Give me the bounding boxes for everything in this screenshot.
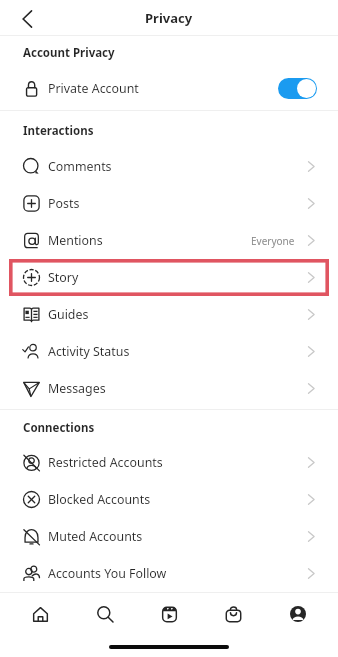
staticText: Story: [48, 269, 79, 286]
button[interactable]: Guides: [0, 296, 338, 333]
staticText: Privacy: [145, 9, 193, 27]
staticText: Posts: [48, 195, 80, 212]
staticText: Guides: [48, 306, 89, 323]
button[interactable]: Private Account: [0, 70, 338, 107]
button[interactable]: Shop: [209, 593, 257, 635]
staticText: Private Account: [48, 80, 139, 97]
button[interactable]: Search: [81, 593, 129, 635]
button[interactable]: Accounts You Follow: [0, 555, 338, 592]
button[interactable]: Comments: [0, 148, 338, 185]
staticText: Comments: [48, 158, 112, 175]
staticText: Messages: [48, 380, 106, 397]
staticText: Restricted Accounts: [48, 454, 163, 471]
staticText: Activity Status: [48, 343, 130, 360]
button[interactable]: Restricted Accounts: [0, 444, 338, 481]
staticText: Account Privacy: [23, 45, 115, 61]
button[interactable]: Story: [0, 259, 338, 296]
staticText: Blocked Accounts: [48, 491, 151, 508]
staticText: Mentions: [48, 232, 103, 249]
staticText: Everyone: [251, 234, 295, 248]
button[interactable]: Back: [0, 1, 47, 36]
staticText: Connections: [23, 420, 95, 436]
button[interactable]: Mentions: [0, 222, 338, 259]
staticText: Accounts You Follow: [48, 565, 167, 582]
button[interactable]: Profile: [274, 593, 322, 635]
button[interactable]: Reels: [145, 593, 193, 635]
button[interactable]: Activity Status: [0, 333, 338, 370]
button[interactable]: Blocked Accounts: [0, 481, 338, 518]
button[interactable]: Messages: [0, 370, 338, 407]
staticText: Interactions: [23, 123, 94, 139]
button[interactable]: Posts: [0, 185, 338, 222]
staticText: Muted Accounts: [48, 528, 143, 545]
button[interactable]: Home: [16, 593, 64, 635]
button[interactable]: Muted Accounts: [0, 518, 338, 555]
